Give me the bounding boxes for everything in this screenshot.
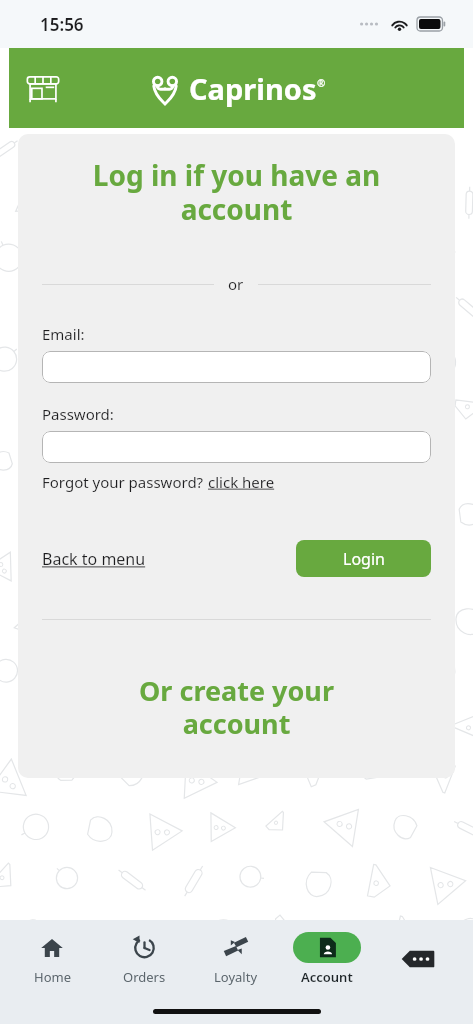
staticText: 15:56 [40, 13, 84, 36]
staticText: Caprinos [189, 69, 317, 108]
button[interactable]: Back to menu [42, 544, 146, 574]
staticText: Forgot your password? [42, 472, 208, 492]
staticText: Loyalty [214, 968, 258, 986]
staticText: Account [301, 968, 353, 986]
button[interactable]: Select store [20, 65, 66, 111]
staticText: click here [208, 472, 275, 492]
button[interactable]: Login [296, 540, 431, 577]
staticText: Home [34, 968, 71, 986]
staticText: Or create your account [42, 672, 431, 742]
staticText: ® [317, 76, 326, 90]
button[interactable]: Account [281, 932, 372, 986]
staticText: Back to menu [42, 548, 146, 570]
button[interactable] [42, 351, 431, 383]
staticText: Log in if you have an account [42, 156, 431, 228]
button[interactable]: Orders [98, 932, 190, 986]
button[interactable] [42, 431, 431, 463]
button[interactable]: More options [395, 939, 441, 979]
button[interactable]: Home [6, 932, 98, 986]
staticText: Email: [42, 324, 85, 344]
staticText: Login [343, 548, 385, 570]
staticText: Password: [42, 404, 114, 424]
staticText: Orders [123, 968, 166, 986]
staticText: or [228, 274, 244, 294]
button[interactable]: Loyalty [190, 932, 281, 986]
button[interactable]: click here [208, 472, 275, 492]
